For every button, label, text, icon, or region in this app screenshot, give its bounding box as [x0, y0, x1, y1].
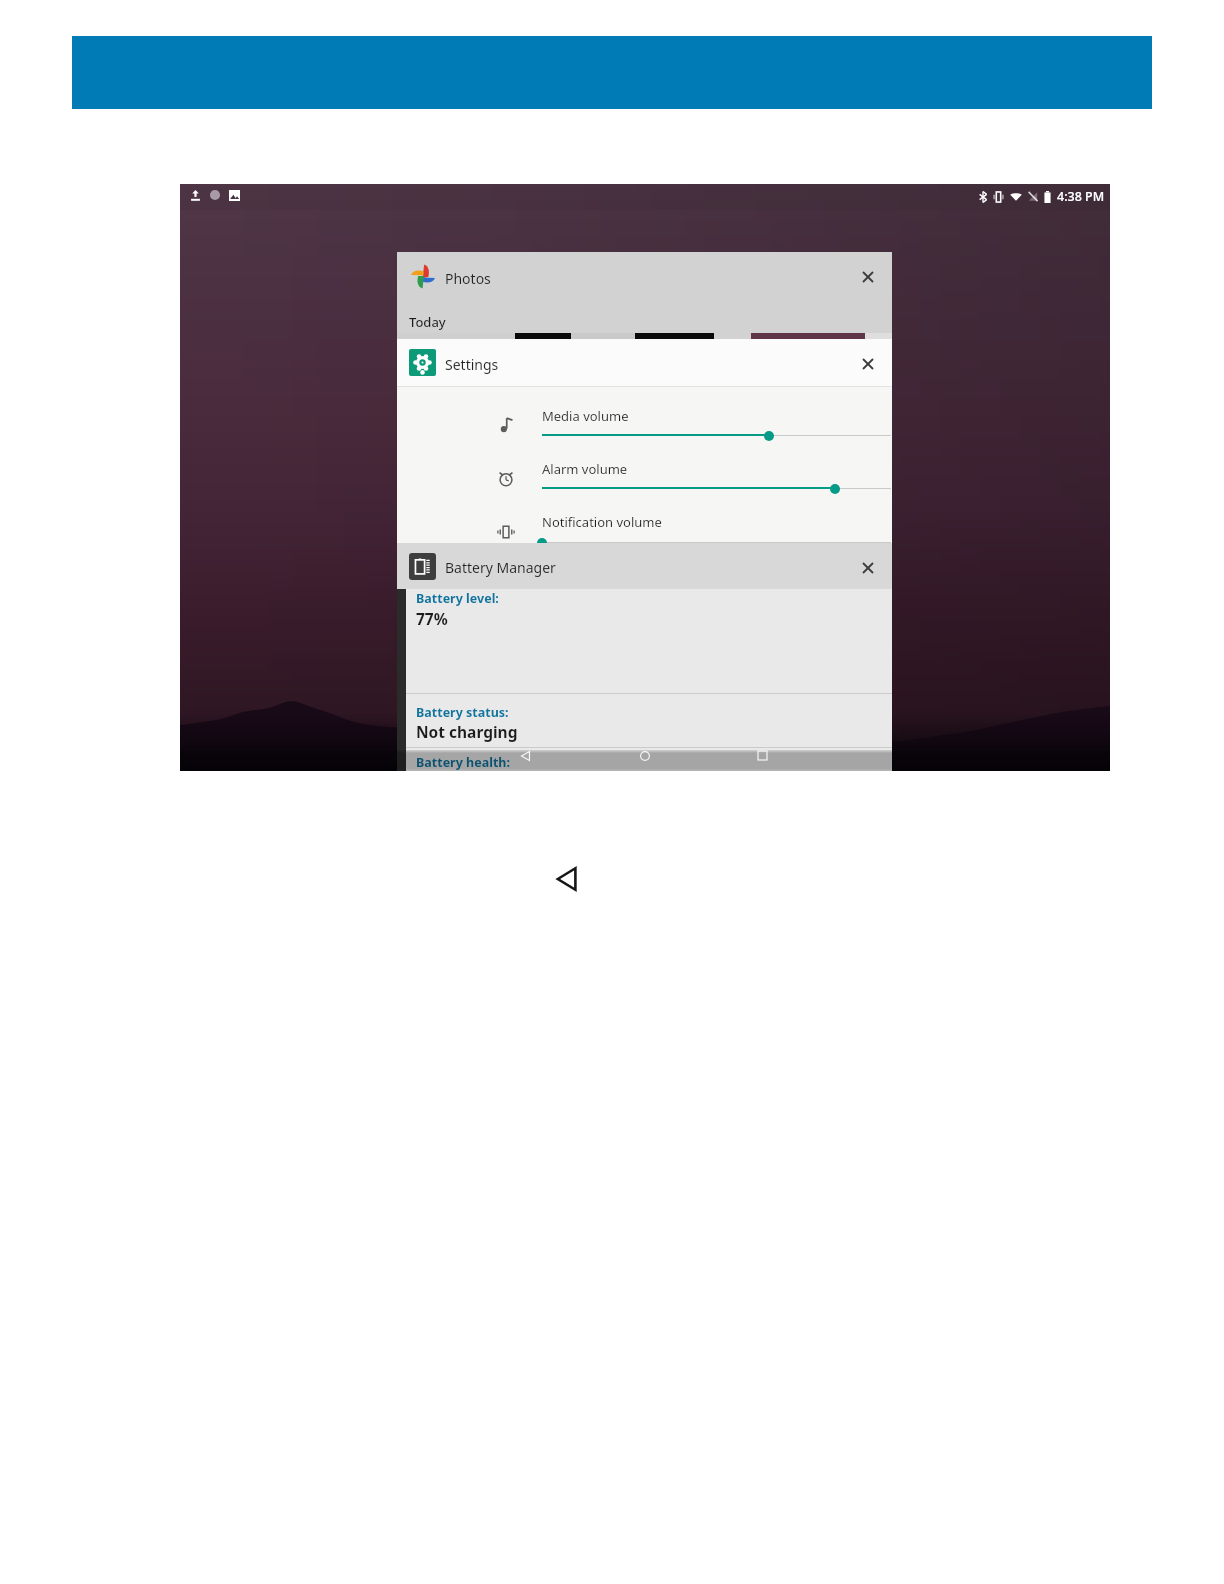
- staticText: Photos: [445, 269, 491, 288]
- button[interactable]: Home: [634, 745, 655, 766]
- staticText: Settings: [445, 355, 499, 374]
- button[interactable]: [397, 507, 892, 560]
- button[interactable]: Back: [515, 745, 536, 766]
- staticText: Not charging: [416, 721, 518, 742]
- staticText: 77%: [416, 608, 448, 629]
- button[interactable]: Battery Manager window header: [397, 543, 892, 589]
- staticText: 4:38 PM: [1057, 188, 1105, 205]
- button[interactable]: [397, 454, 892, 507]
- staticText: Battery status:: [416, 704, 509, 721]
- button[interactable]: Photos window header: [397, 252, 892, 299]
- button[interactable]: Recents: [752, 745, 773, 766]
- button[interactable]: Close Settings: [853, 349, 883, 379]
- staticText: Battery health:: [416, 754, 510, 771]
- button[interactable]: Close Photos: [853, 262, 883, 292]
- button[interactable]: Settings window header: [397, 339, 892, 386]
- button[interactable]: Close Battery Manager: [853, 553, 883, 583]
- staticText: Notification volume: [542, 513, 662, 531]
- button[interactable]: [397, 401, 892, 454]
- staticText: Battery Manager: [445, 558, 556, 577]
- staticText: Today: [409, 313, 446, 331]
- button[interactable]: Back: [543, 855, 591, 903]
- staticText: Alarm volume: [542, 460, 628, 478]
- staticText: Media volume: [542, 407, 629, 425]
- staticText: Battery level:: [416, 590, 499, 607]
